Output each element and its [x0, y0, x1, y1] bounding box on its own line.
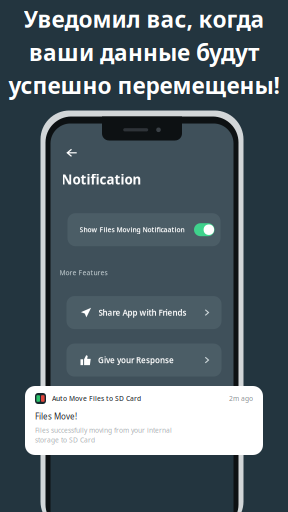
staticText: Files Move!	[35, 411, 77, 422]
staticText: Notification	[61, 170, 141, 188]
staticText: ваши данные будут	[29, 37, 259, 67]
button[interactable]: Share App with Friends	[66, 296, 221, 329]
staticText: Files successfully moving from your inte…	[35, 426, 172, 434]
staticText: More Features	[59, 268, 107, 277]
staticText: успешно перемещены!	[8, 70, 279, 100]
button[interactable]: Give your Response	[66, 344, 221, 377]
staticText: Show Files Moving Notificaation	[79, 225, 184, 234]
staticText: Share App with Friends	[98, 307, 186, 318]
button[interactable]: Show Files Moving Notificaation	[67, 213, 220, 246]
staticText: 2m ago	[229, 394, 253, 403]
staticText: Auto Move Files to SD Card	[52, 394, 141, 403]
staticText: storage to SD Card	[35, 435, 95, 444]
staticText: Give your Response	[98, 355, 174, 365]
staticText: Уведомил вас, когда	[23, 4, 264, 34]
button[interactable]: Back	[50, 145, 83, 160]
